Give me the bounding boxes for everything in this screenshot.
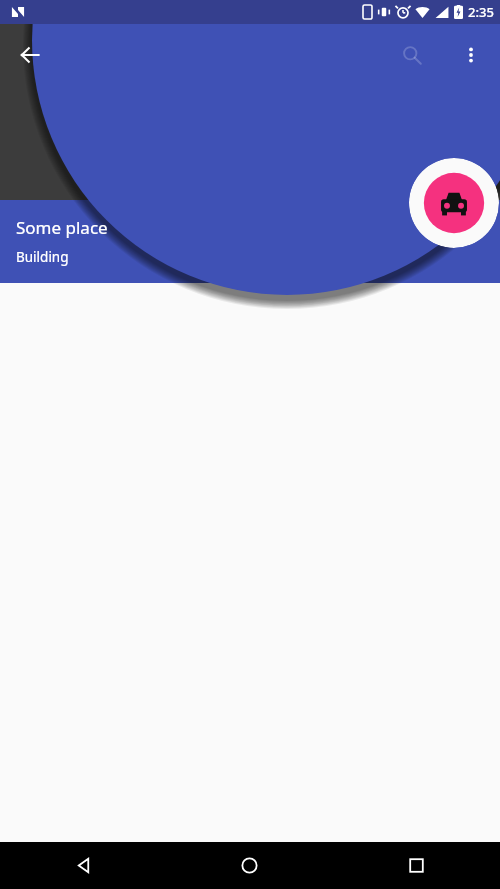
button[interactable]: Recent apps	[333, 842, 500, 889]
button[interactable]: More options	[447, 31, 495, 79]
button[interactable]: Search	[388, 31, 436, 79]
staticText: Some place	[16, 216, 108, 239]
button[interactable]: Back	[0, 842, 166, 889]
button[interactable]: Home	[166, 842, 333, 889]
staticText: Building	[16, 248, 69, 266]
staticText: 2:35	[468, 3, 494, 21]
button[interactable]: Directions	[409, 158, 499, 248]
button[interactable]: Back	[6, 31, 54, 79]
